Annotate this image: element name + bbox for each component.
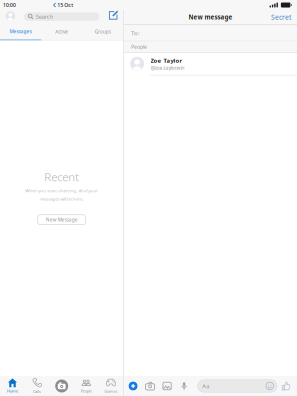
button[interactable]: Camera: [49, 376, 74, 396]
button[interactable]: Secret: [271, 12, 291, 22]
staticText: Messages: [10, 28, 32, 34]
staticText: To:: [131, 29, 140, 37]
button[interactable]: People: [74, 376, 99, 396]
button[interactable]: Aa: [198, 380, 277, 392]
staticText: @zoe.taylor.win: [151, 64, 185, 71]
button[interactable]: Active: [41, 23, 82, 40]
button[interactable]: Messages: [0, 23, 41, 40]
button[interactable]: Profile: [5, 11, 15, 21]
staticText: Search: [36, 13, 53, 20]
staticText: New Message: [46, 216, 78, 223]
staticText: Secret: [271, 12, 291, 22]
button[interactable]: Search: [24, 12, 99, 21]
staticText: messages will be here.: [40, 196, 83, 202]
button[interactable]: Groups: [82, 23, 123, 40]
button[interactable]: Calls: [25, 376, 49, 396]
staticText: When you start chatting, all of your: [25, 188, 98, 193]
staticText: New message: [189, 13, 233, 21]
staticText: Recent: [44, 169, 79, 185]
staticText: Zoe Taylor: [151, 56, 183, 64]
button[interactable]: New Message: [38, 215, 86, 224]
staticText: Aa: [202, 382, 209, 390]
staticText: 10:00: [3, 2, 16, 8]
button[interactable]: Games: [99, 376, 123, 396]
staticText: Calls: [33, 389, 41, 394]
button[interactable]: Open camera: [142, 378, 159, 394]
staticText: Games: [104, 389, 117, 394]
staticText: Groups: [95, 28, 111, 35]
button[interactable]: Send a like: [279, 379, 293, 393]
button[interactable]: More options: [125, 378, 142, 394]
button[interactable]: Home: [0, 376, 25, 396]
staticText: People: [131, 43, 147, 50]
button[interactable]: Photos: [159, 378, 176, 394]
staticText: Active: [55, 28, 68, 35]
staticText: Home: [7, 388, 18, 394]
staticText: People: [81, 388, 92, 394]
button[interactable]: New message: [109, 11, 118, 20]
staticText: 15 Oct: [57, 1, 73, 9]
button[interactable]: Zoe Taylor: [124, 53, 297, 75]
button[interactable]: Voice message: [176, 378, 193, 394]
